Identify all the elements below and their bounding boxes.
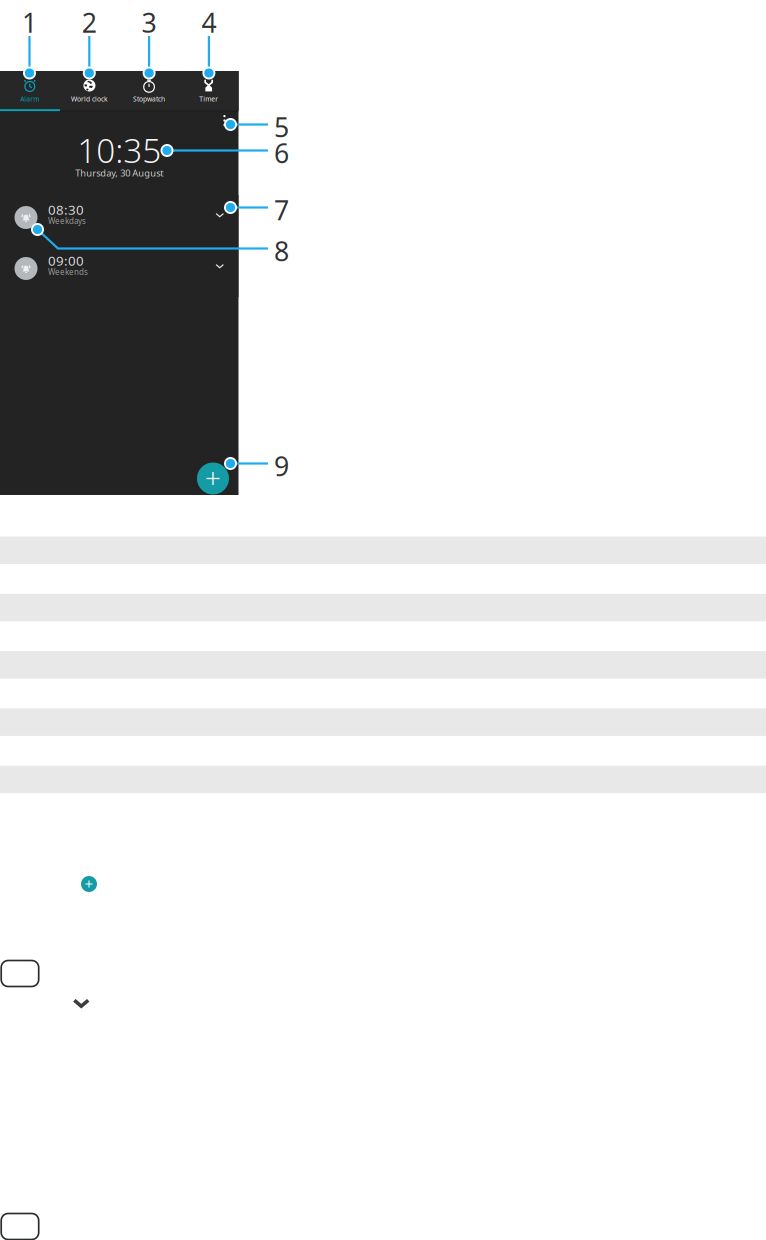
staticText: 3 (142, 5, 157, 40)
staticText: 09:00 (48, 252, 84, 269)
button[interactable]: Alarm (0, 71, 60, 110)
button[interactable]: 08:30 (0, 195, 238, 246)
button[interactable]: Add (81, 876, 97, 892)
staticText: 2 (82, 5, 97, 40)
button[interactable]: Timer (179, 71, 238, 110)
staticText: Timer (199, 95, 218, 103)
staticText: Stopwatch (133, 95, 165, 103)
staticText: Weekends (48, 267, 88, 277)
staticText: World clock (71, 95, 108, 103)
staticText: 10:35 (77, 128, 161, 172)
staticText: 5 (274, 109, 289, 145)
button[interactable]: Add alarm (197, 462, 229, 494)
staticText: 6 (274, 135, 289, 171)
staticText: Thursday, 30 August (75, 167, 163, 179)
staticText: Alarm (20, 95, 39, 103)
staticText: 9 (274, 448, 289, 484)
staticText: 7 (274, 192, 289, 228)
button[interactable]: Toggle switch (1, 960, 39, 986)
button[interactable]: More options (215, 111, 233, 129)
button[interactable]: Expand (72, 998, 90, 1008)
staticText: Weekdays (48, 216, 86, 226)
button[interactable]: World clock (60, 71, 119, 110)
button[interactable]: 09:00 (0, 246, 238, 297)
staticText: 1 (22, 5, 37, 40)
staticText: 4 (201, 5, 216, 40)
button[interactable]: Toggle switch (1, 1213, 39, 1239)
staticText: 08:30 (48, 201, 84, 218)
button[interactable]: Stopwatch (119, 71, 179, 110)
staticText: 8 (274, 233, 289, 269)
